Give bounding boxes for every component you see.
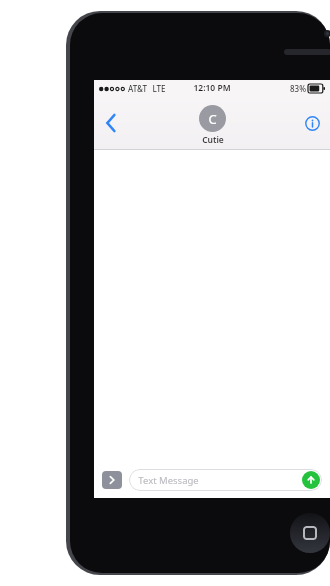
button[interactable]: Back bbox=[96, 103, 126, 143]
staticText: 83% bbox=[290, 83, 306, 94]
button[interactable]: C bbox=[199, 105, 226, 146]
staticText: 12:10 PM bbox=[193, 82, 231, 94]
staticText: AT&T bbox=[128, 83, 147, 94]
button[interactable]: Text Message bbox=[129, 469, 322, 491]
button[interactable]: Details bbox=[298, 103, 326, 143]
staticText: C bbox=[208, 110, 217, 128]
button[interactable]: Send bbox=[302, 471, 320, 489]
staticText: LTE bbox=[152, 83, 166, 94]
staticText: Cutie bbox=[202, 134, 224, 146]
button[interactable]: Home bbox=[290, 513, 330, 553]
staticText: Text Message bbox=[138, 474, 199, 487]
button[interactable]: More options bbox=[102, 471, 122, 489]
